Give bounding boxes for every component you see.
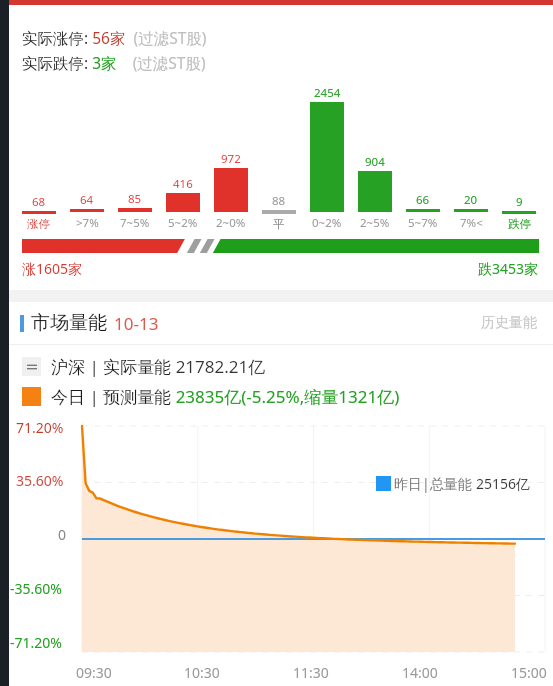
button[interactable]: 68 [14,83,63,231]
staticText: 0~2% [312,215,342,231]
staticText: 跌3453家 [478,259,539,278]
staticText: 85 [128,191,142,207]
staticText: -35.60% [10,579,62,598]
staticText: 2~0% [216,215,246,231]
staticText: 25156亿 [476,474,531,493]
staticText: 平 [273,217,285,231]
button[interactable]: 9 [495,83,543,231]
button[interactable]: 64 [63,83,111,231]
staticText: 20 [464,192,478,208]
staticText: 10-13 [114,312,159,335]
staticText: 68 [32,194,46,210]
button[interactable]: 904 [351,83,399,231]
staticText: 416 [173,176,193,192]
button[interactable]: 市场量能 [0,302,553,344]
staticText: 71.20% [16,418,64,437]
staticText: 2454 [314,85,341,101]
staticText: 15:00 [511,663,547,682]
staticText: 10:30 [184,663,220,682]
staticText: 实际涨停: 56家 (过滤ST股) [22,27,207,48]
staticText: 涨停 [27,217,50,231]
staticText: 昨日|总量能 [394,474,476,493]
staticText: 88 [272,193,286,209]
staticText: 跌停 [508,217,531,231]
button[interactable]: 2454 [303,83,351,231]
staticText: 涨1605家 [22,259,83,278]
staticText: 9 [516,194,523,210]
button[interactable]: 昨日|总量能 [376,474,531,493]
button[interactable]: 416 [159,83,207,231]
staticText: >7% [76,215,99,231]
staticText: 35.60% [16,471,64,490]
staticText: 实际跌停: 3家 (过滤ST股) [22,52,206,73]
staticText: 2~5% [360,215,390,231]
staticText: 11:30 [293,663,329,682]
staticText: -71.20% [10,633,62,652]
staticText: 09:30 [76,663,112,682]
staticText: 5~7% [408,215,438,231]
staticText: 904 [365,154,385,170]
button[interactable]: 88 [255,83,303,231]
staticText: 沪深 | 实际量能 21782.21亿 [51,355,266,378]
staticText: 今日 | 预测量能 23835亿(-5.25%,缩量1321亿) [51,385,400,408]
staticText: 14:00 [402,663,438,682]
staticText: 972 [221,151,241,167]
staticText: 0 [58,525,67,544]
staticText: 5~2% [168,215,198,231]
button[interactable]: 85 [111,83,159,231]
button[interactable]: 20 [447,83,495,231]
staticText: 66 [416,192,430,208]
staticText: 7~5% [120,215,150,231]
button[interactable]: 66 [399,83,447,231]
staticText: 7%< [460,215,483,231]
button[interactable]: 972 [207,83,255,231]
staticText: 市场量能 [31,311,107,335]
staticText: 64 [80,192,94,208]
staticText: 历史量能 [481,314,537,332]
